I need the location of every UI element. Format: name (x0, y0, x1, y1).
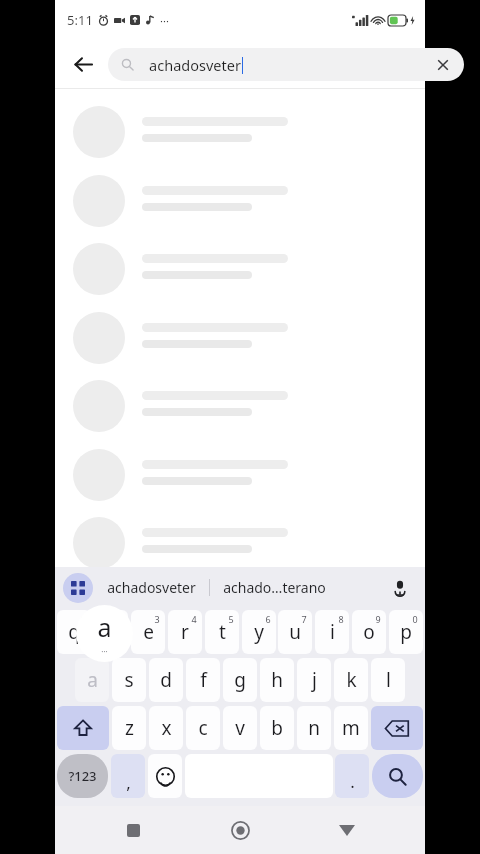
button[interactable] (55, 241, 425, 310)
staticText: c (198, 715, 208, 741)
staticText: w (104, 619, 119, 645)
staticText: g (234, 667, 246, 693)
staticText: ?123 (68, 767, 97, 785)
button[interactable]: p (389, 610, 423, 654)
button[interactable]: z (112, 706, 146, 750)
staticText: achadosveter (107, 578, 196, 597)
staticText: o (363, 619, 375, 645)
staticText: b (271, 715, 283, 741)
button[interactable] (55, 447, 425, 516)
button[interactable]: q (57, 610, 91, 654)
staticText: a (87, 667, 98, 693)
button[interactable]: c (186, 706, 220, 750)
staticText: d (160, 667, 172, 693)
staticText: 0 (412, 613, 418, 625)
button[interactable] (55, 515, 425, 584)
staticText: achado…terano (223, 578, 326, 597)
button[interactable]: o (352, 610, 386, 654)
button[interactable]: Search (372, 754, 423, 798)
button[interactable]: a (75, 658, 109, 702)
button[interactable]: ?123 (57, 754, 108, 798)
staticText: 4 (191, 613, 197, 625)
staticText: 8 (338, 613, 344, 625)
staticText: 6 (265, 613, 271, 625)
button[interactable]: n (297, 706, 331, 750)
staticText: n (308, 715, 320, 741)
staticText: j (312, 667, 317, 693)
button[interactable] (55, 310, 425, 379)
button[interactable]: Back (327, 810, 367, 850)
button[interactable] (55, 378, 425, 447)
staticText: e (143, 619, 154, 645)
staticText: 7 (301, 613, 307, 625)
button[interactable] (55, 173, 425, 242)
button[interactable]: achado…terano (219, 574, 330, 601)
button[interactable] (55, 104, 425, 173)
button[interactable]: . (335, 754, 369, 798)
button[interactable]: f (186, 658, 220, 702)
staticText: p (400, 619, 412, 645)
staticText: f (200, 667, 207, 693)
staticText: z (125, 715, 134, 741)
staticText: i (330, 619, 335, 645)
button[interactable]: Clear search (430, 52, 456, 78)
button[interactable]: g (223, 658, 257, 702)
staticText: l (386, 667, 391, 693)
staticText: 5 (228, 613, 234, 625)
button[interactable]: Recent apps (113, 810, 153, 850)
staticText: u (289, 619, 301, 645)
button[interactable]: achadosveter (103, 574, 200, 601)
staticText: a (97, 610, 112, 644)
staticText: t (219, 619, 226, 645)
button[interactable]: Back (65, 46, 101, 82)
staticText: h (271, 667, 283, 693)
staticText: m (342, 715, 360, 741)
button[interactable]: s (112, 658, 146, 702)
button[interactable]: h (260, 658, 294, 702)
button[interactable]: j (297, 658, 331, 702)
button[interactable]: Shift (57, 706, 109, 750)
button[interactable]: l (371, 658, 405, 702)
button[interactable]: v (223, 706, 257, 750)
button[interactable]: r (168, 610, 202, 654)
staticText: 3 (154, 613, 160, 625)
staticText: x (161, 715, 172, 741)
button[interactable]: Keyboard toolbar (63, 573, 93, 603)
button[interactable]: m (334, 706, 368, 750)
staticText: v (235, 715, 245, 741)
staticText: achadosveter (149, 55, 241, 75)
staticText: , (126, 771, 131, 794)
button[interactable]: y (242, 610, 276, 654)
button[interactable]: k (334, 658, 368, 702)
staticText: r (181, 619, 189, 645)
button[interactable]: d (149, 658, 183, 702)
button[interactable]: u (278, 610, 312, 654)
button[interactable]: i (315, 610, 349, 654)
button[interactable]: w (94, 610, 128, 654)
button[interactable]: Voice input (385, 573, 415, 603)
staticText: y (254, 619, 264, 645)
staticText: s (124, 667, 134, 693)
button[interactable]: achadosveter (108, 48, 464, 81)
staticText: . (350, 770, 355, 793)
button[interactable]: e (131, 610, 165, 654)
button[interactable]: Backspace (371, 706, 423, 750)
button[interactable]: x (149, 706, 183, 750)
button[interactable]: t (205, 610, 239, 654)
staticText: 9 (375, 613, 381, 625)
staticText: q (68, 619, 80, 645)
staticText: ··· (101, 646, 108, 657)
staticText: 5:11 (67, 11, 93, 29)
button[interactable]: Home (220, 810, 260, 850)
button[interactable]: b (260, 706, 294, 750)
button[interactable]: Emoji (148, 754, 182, 798)
staticText: k (346, 667, 357, 693)
staticText: ··· (160, 13, 169, 28)
button[interactable]: , (111, 754, 145, 798)
